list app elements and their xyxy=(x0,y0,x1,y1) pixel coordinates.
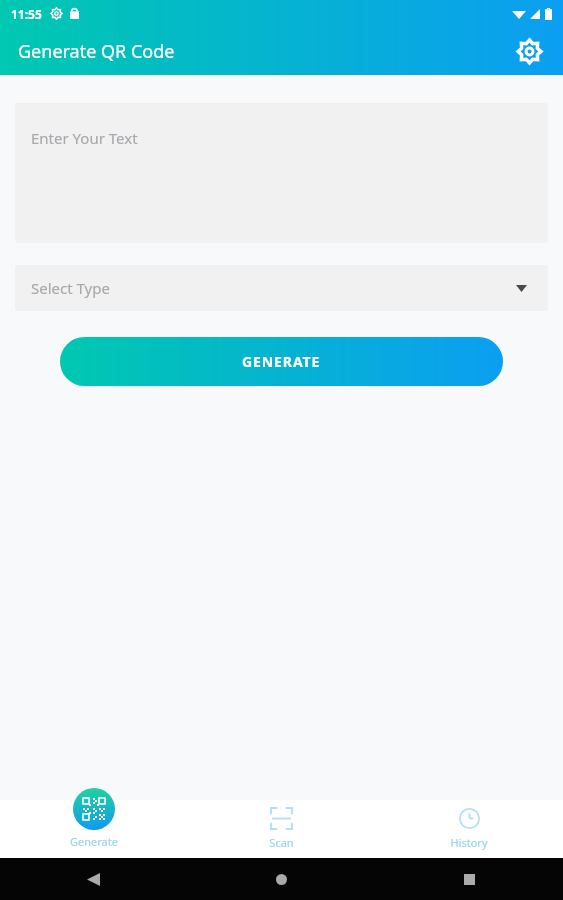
button[interactable]: Enter Your Text xyxy=(15,103,548,243)
button[interactable]: History xyxy=(375,800,563,858)
staticText: History xyxy=(450,835,488,850)
other: Generate xyxy=(73,788,115,830)
staticText: Enter Your Text xyxy=(31,128,138,148)
other: History xyxy=(459,808,480,829)
button[interactable]: GENERATE xyxy=(60,337,503,386)
other: Open type list xyxy=(516,285,527,292)
button[interactable]: Settings xyxy=(509,31,549,71)
button[interactable]: Select Type xyxy=(15,265,548,311)
staticText: Generate QR Code xyxy=(18,39,175,64)
button[interactable]: Home xyxy=(187,858,375,900)
staticText: GENERATE xyxy=(242,352,321,371)
staticText: 11:55 xyxy=(11,6,42,22)
button[interactable]: Recent apps xyxy=(375,858,563,900)
button[interactable]: Back xyxy=(0,858,187,900)
button[interactable]: Scan xyxy=(187,800,375,858)
staticText: Scan xyxy=(269,835,294,850)
other: Scan xyxy=(271,808,292,829)
staticText: Generate xyxy=(70,834,118,849)
button[interactable]: Generate xyxy=(0,800,187,858)
staticText: Select Type xyxy=(31,278,110,298)
